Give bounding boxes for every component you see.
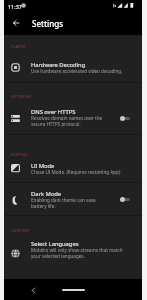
- staticText: 11:37: [8, 3, 22, 10]
- staticText: Select Languages: [31, 240, 79, 248]
- staticText: NETWORK: [11, 94, 32, 99]
- staticText: Hardware Decoding: [31, 61, 86, 69]
- button[interactable]: Back: [7, 14, 25, 32]
- button[interactable]: Back: [26, 283, 40, 297]
- staticText: Settings: [32, 18, 64, 29]
- button[interactable]: [4, 240, 142, 266]
- staticText: Mobdro will only show streams that match…: [31, 247, 123, 259]
- staticText: Resolves domain names over the secure HT…: [31, 115, 103, 127]
- staticText: UI Mode: [31, 162, 55, 170]
- button[interactable]: Home: [62, 289, 85, 291]
- button[interactable]: Toggle: [120, 116, 130, 121]
- staticText: Enabling dark theme can save battery lif…: [31, 197, 96, 209]
- button[interactable]: Toggle: [120, 197, 130, 202]
- staticText: DISPLAY: [11, 152, 28, 157]
- staticText: Chose UI Mode. (Requires restarting App): [31, 169, 121, 175]
- staticText: PLAYER: [11, 44, 26, 49]
- staticText: DNS over HTTPS: [31, 108, 76, 116]
- staticText: Use hardware accelerated video decoding.: [31, 68, 123, 74]
- button[interactable]: [4, 54, 142, 80]
- button[interactable]: [4, 155, 142, 181]
- staticText: Dark Mode: [31, 190, 62, 198]
- button[interactable]: [4, 187, 142, 213]
- button[interactable]: [4, 105, 142, 131]
- staticText: CONTENT: [11, 228, 31, 233]
